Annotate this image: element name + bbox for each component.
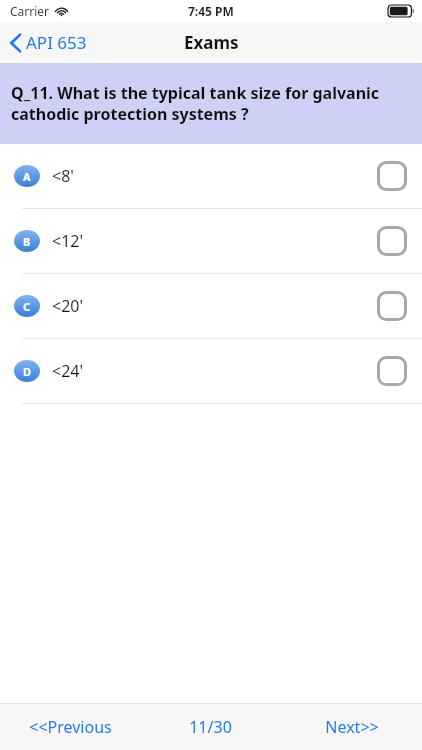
button[interactable]: Select answer (376, 355, 408, 387)
staticText: Q_11. What is the typical tank size for … (11, 82, 413, 125)
button[interactable]: Select answer (376, 160, 408, 192)
staticText: <20' (52, 295, 84, 317)
staticText: C (23, 299, 31, 314)
button[interactable]: D (0, 339, 422, 403)
button[interactable]: Next>> (281, 704, 422, 750)
staticText: 7:45 PM (188, 3, 234, 19)
staticText: A (23, 169, 31, 184)
staticText: <<Previous (29, 716, 112, 738)
button[interactable]: Select answer (376, 225, 408, 257)
staticText: <12' (52, 230, 84, 252)
button[interactable]: Select answer (376, 290, 408, 322)
staticText: 11/30 (189, 716, 232, 738)
button[interactable]: A (0, 144, 422, 208)
staticText: Carrier (10, 3, 50, 19)
staticText: <24' (52, 360, 84, 382)
staticText: D (23, 364, 32, 379)
staticText: <8' (52, 165, 74, 187)
button[interactable]: <<Previous (0, 704, 140, 750)
button[interactable]: API 653 (0, 25, 97, 60)
staticText: Exams (184, 31, 239, 54)
staticText: B (23, 234, 31, 249)
button[interactable]: C (0, 274, 422, 338)
staticText: Next>> (325, 716, 379, 738)
staticText: API 653 (26, 31, 87, 54)
button[interactable]: B (0, 209, 422, 273)
